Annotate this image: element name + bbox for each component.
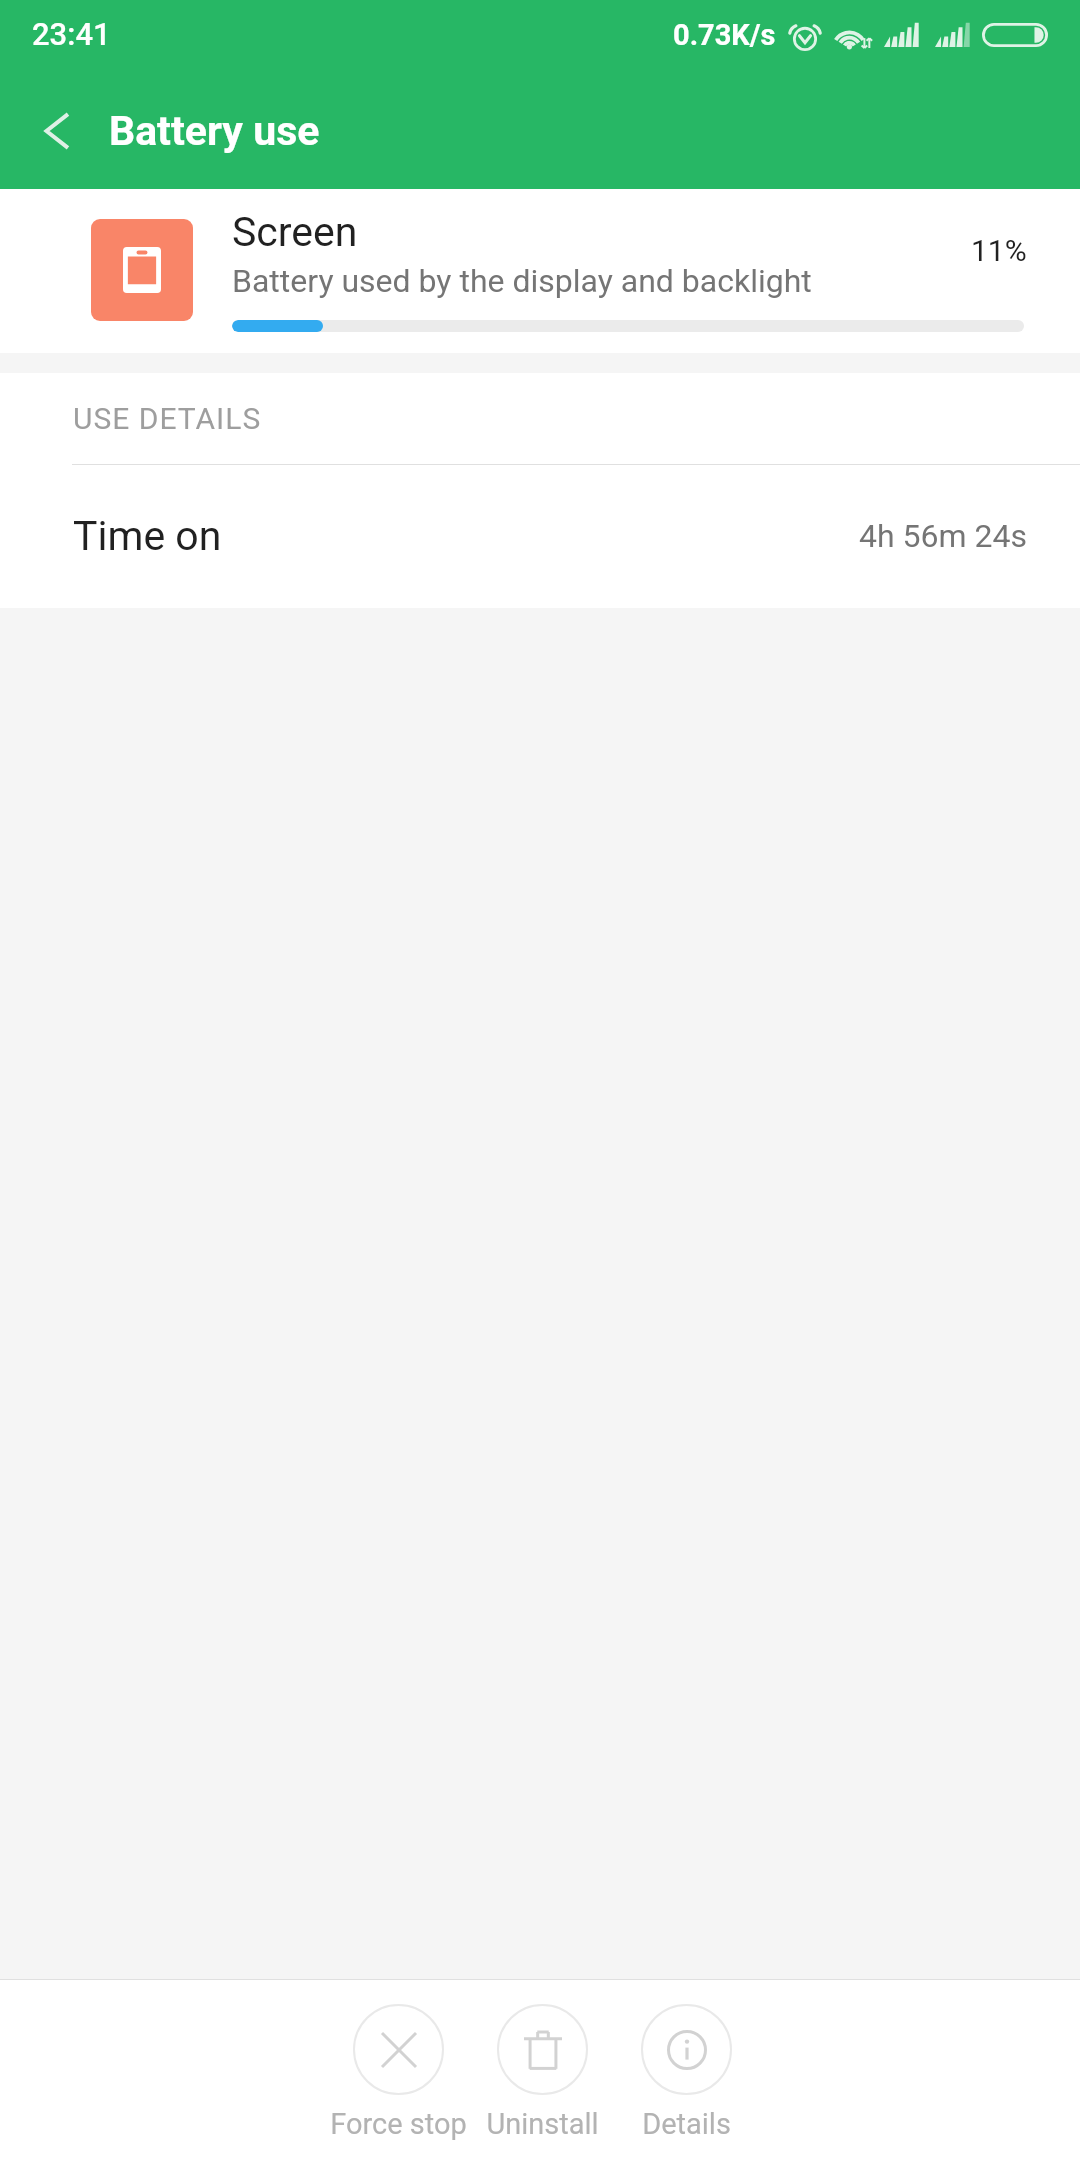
staticText: Battery use <box>109 107 320 155</box>
button[interactable]: Back <box>10 83 106 179</box>
button[interactable]: Uninstall <box>470 2004 614 2141</box>
button[interactable]: Screen <box>0 189 1080 353</box>
staticText: Screen <box>232 208 358 256</box>
staticText: 0.73K/s <box>673 18 776 52</box>
button[interactable]: Time on <box>0 465 1080 607</box>
staticText: 11% <box>971 233 1027 268</box>
staticText: Uninstall <box>486 2107 599 2141</box>
staticText: Force stop <box>330 2107 467 2141</box>
staticText: USE DETAILS <box>73 401 262 436</box>
button[interactable]: Details <box>614 2004 758 2141</box>
staticText: 23:41 <box>32 16 111 52</box>
staticText: Time on <box>73 512 222 560</box>
button[interactable]: Force stop <box>326 2004 470 2141</box>
staticText: Battery used by the display and backligh… <box>232 262 812 300</box>
staticText: Details <box>642 2107 731 2141</box>
staticText: 4h 56m 24s <box>859 517 1027 555</box>
